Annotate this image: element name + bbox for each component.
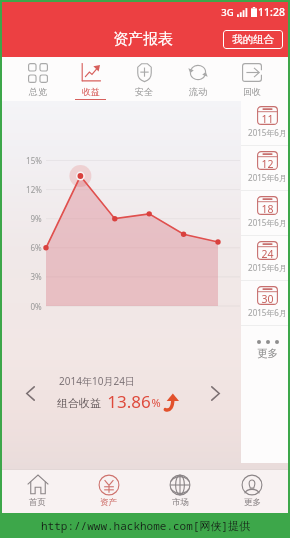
button[interactable]: 更多 xyxy=(216,469,288,513)
staticText: 市场 xyxy=(172,497,189,508)
button[interactable]: 18 xyxy=(241,191,288,235)
staticText: 2015年6月 xyxy=(248,262,287,273)
staticText: 总览 xyxy=(29,86,47,97)
staticText: http://www.hackhome.com[网侠]提供 xyxy=(41,518,250,533)
button[interactable]: 收益 xyxy=(64,57,117,101)
button[interactable]: 24 xyxy=(241,236,288,280)
button[interactable]: 11 xyxy=(241,101,288,145)
staticText: 0% xyxy=(30,301,42,312)
staticText: 更多 xyxy=(257,347,278,360)
button[interactable]: 我的组合 xyxy=(223,30,283,49)
staticText: 30 xyxy=(261,292,274,306)
staticText: 收益 xyxy=(82,86,100,97)
staticText: 2014年10月24日 xyxy=(59,374,135,388)
staticText: 更多 xyxy=(244,497,261,508)
staticText: 3% xyxy=(30,271,42,282)
staticText: 流动 xyxy=(189,86,207,97)
button[interactable]: 30 xyxy=(241,281,288,325)
button[interactable]: 回收 xyxy=(225,57,279,101)
staticText: 18 xyxy=(261,202,274,216)
button[interactable]: 下一天 xyxy=(201,379,229,407)
staticText: % xyxy=(151,395,161,410)
button[interactable]: 首页 xyxy=(2,469,73,513)
button[interactable]: 安全 xyxy=(117,57,171,101)
staticText: 11 xyxy=(261,112,274,126)
staticText: 首页 xyxy=(29,497,46,508)
staticText: 组合收益 xyxy=(57,396,101,410)
staticText: 9% xyxy=(30,213,42,224)
staticText: 12% xyxy=(26,184,42,195)
staticText: 资产 xyxy=(100,497,117,508)
staticText: 13.86 xyxy=(107,390,151,413)
staticText: 资产报表 xyxy=(113,30,173,49)
staticText: 11:28 xyxy=(258,5,285,19)
staticText: 2015年6月 xyxy=(248,172,287,183)
button[interactable]: 资产 xyxy=(73,469,144,513)
staticText: 2015年6月 xyxy=(248,217,287,228)
staticText: 2015年6月 xyxy=(248,307,287,318)
staticText: 24 xyxy=(261,247,274,261)
button[interactable]: 总览 xyxy=(11,57,64,101)
button[interactable]: 上一天 xyxy=(16,379,44,407)
staticText: 3G xyxy=(221,6,234,19)
staticText: 15% xyxy=(26,155,42,166)
staticText: 安全 xyxy=(135,86,153,97)
button[interactable]: 市场 xyxy=(144,469,216,513)
staticText: 12 xyxy=(261,157,274,171)
button[interactable]: 流动 xyxy=(171,57,225,101)
button[interactable]: 更多 xyxy=(241,326,288,463)
staticText: 回收 xyxy=(243,86,261,97)
staticText: 2015年6月 xyxy=(248,127,287,138)
button[interactable]: 12 xyxy=(241,146,288,190)
staticText: 6% xyxy=(30,242,42,253)
staticText: 我的组合 xyxy=(232,33,274,46)
